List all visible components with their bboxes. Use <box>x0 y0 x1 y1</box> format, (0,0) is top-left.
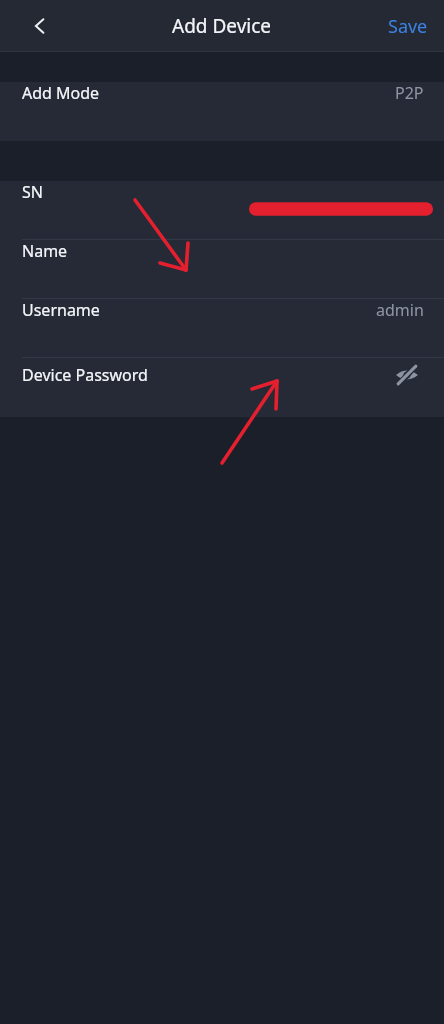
staticText: Add Mode <box>22 82 100 104</box>
button[interactable]: Show password <box>390 358 424 392</box>
staticText: Save <box>388 14 428 39</box>
button[interactable]: Username <box>0 299 444 358</box>
button[interactable]: Add Mode <box>0 82 444 141</box>
staticText: Add Device <box>172 13 272 39</box>
staticText: SN <box>22 181 43 203</box>
button[interactable]: SN <box>0 181 444 240</box>
staticText: Device Password <box>22 364 148 386</box>
staticText: Username <box>22 299 100 321</box>
button[interactable]: Device Password <box>0 358 444 417</box>
staticText: admin <box>376 299 424 321</box>
staticText: P2P <box>395 82 424 104</box>
staticText: Name <box>22 240 68 262</box>
button[interactable]: Name <box>0 240 444 299</box>
button[interactable]: Save <box>372 4 444 49</box>
button[interactable]: Back <box>20 6 60 46</box>
